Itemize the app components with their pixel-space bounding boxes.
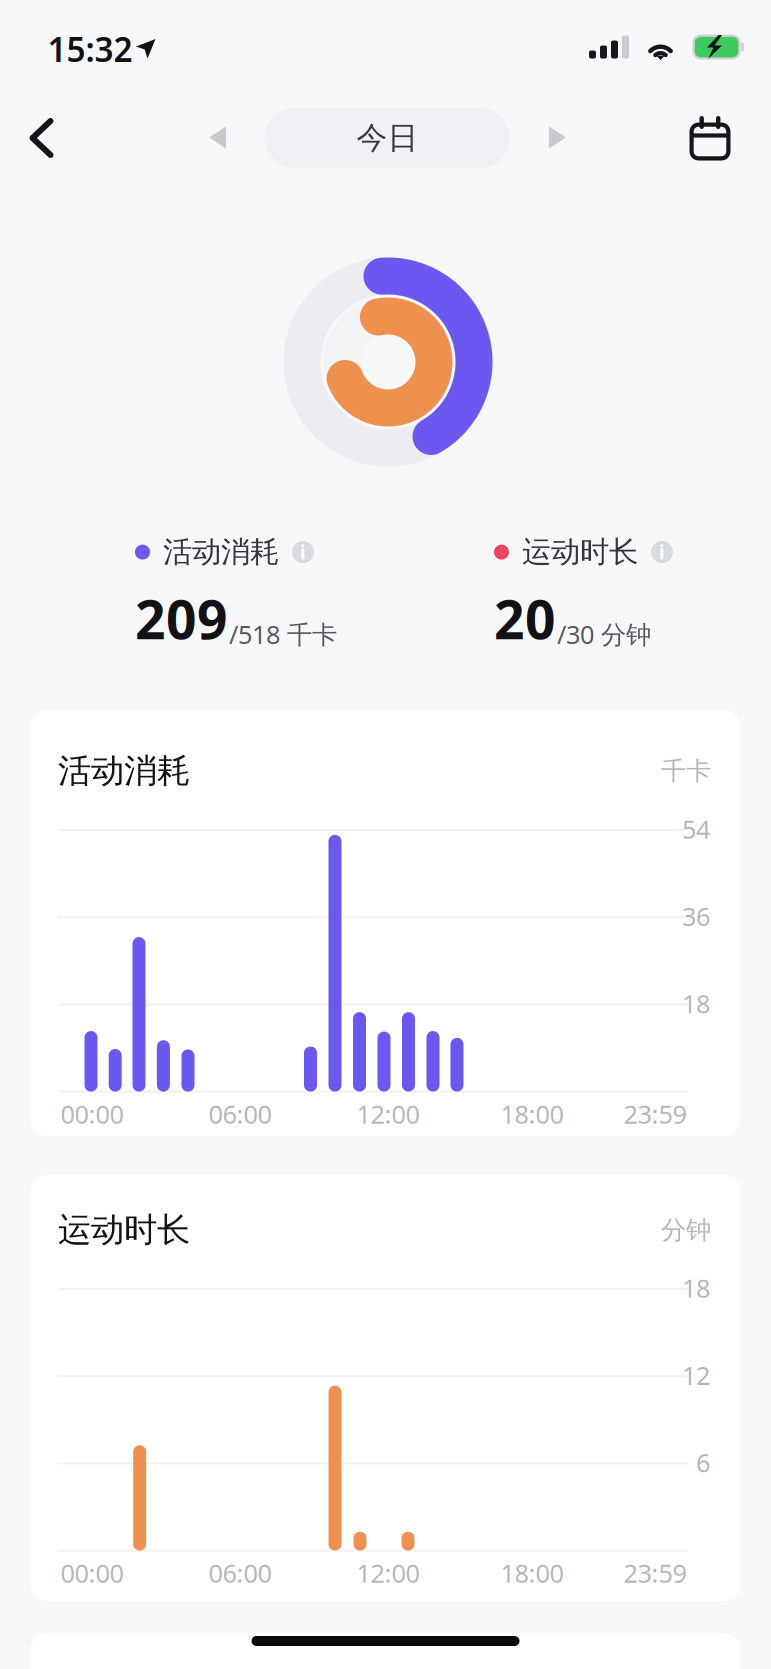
button[interactable]: 返回 <box>13 96 69 180</box>
staticText: 分钟 <box>661 1214 711 1245</box>
staticText: 运动时长 <box>58 1209 190 1250</box>
staticText: 23:59 <box>623 1097 686 1131</box>
button[interactable]: 前一天 <box>189 104 247 171</box>
staticText: 活动消耗 <box>58 750 190 791</box>
staticText: /30 分钟 <box>557 617 651 651</box>
staticText: i <box>300 540 306 564</box>
staticText: 12 <box>682 1358 710 1392</box>
staticText: 18:00 <box>500 1556 563 1590</box>
staticText: 12:00 <box>356 1556 419 1590</box>
staticText: 20 <box>494 583 556 654</box>
staticText: 23:59 <box>623 1556 686 1590</box>
button[interactable]: 今日 <box>265 108 510 168</box>
staticText: 36 <box>682 899 710 933</box>
staticText: 54 <box>682 812 710 846</box>
staticText: 12:00 <box>356 1097 419 1131</box>
staticText: 00:00 <box>60 1556 123 1590</box>
button[interactable]: 日历 <box>673 97 746 178</box>
staticText: 06:00 <box>208 1097 271 1131</box>
staticText: 06:00 <box>208 1556 271 1590</box>
staticText: 千卡 <box>661 755 711 786</box>
staticText: i <box>659 540 665 564</box>
staticText: 运动时长 <box>522 534 638 570</box>
staticText: 15:32 <box>47 27 132 71</box>
staticText: 今日 <box>356 119 418 157</box>
staticText: 活动消耗 <box>163 534 279 570</box>
staticText: 18 <box>682 1271 710 1305</box>
button[interactable]: 后一天 <box>529 104 587 171</box>
staticText: 18 <box>682 987 710 1020</box>
staticText: /518 千卡 <box>229 617 337 651</box>
staticText: 18:00 <box>500 1097 563 1131</box>
staticText: 6 <box>696 1446 710 1479</box>
staticText: 00:00 <box>60 1097 123 1131</box>
staticText: 209 <box>135 583 228 654</box>
